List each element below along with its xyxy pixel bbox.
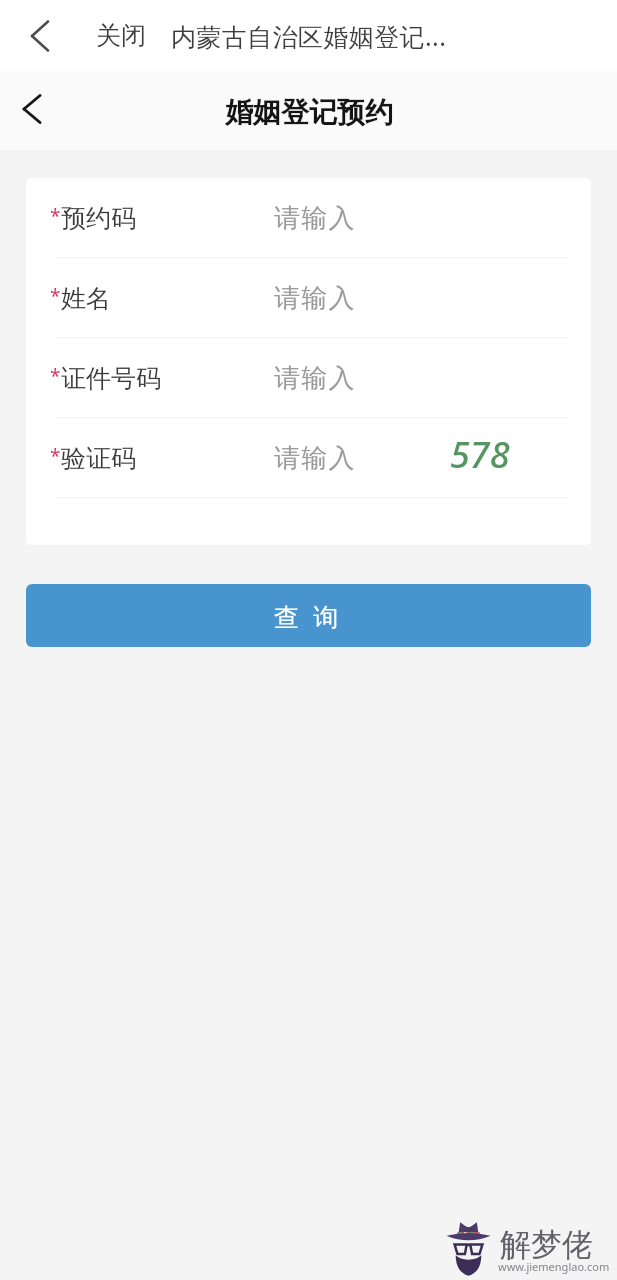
button[interactable]: * [26, 258, 591, 338]
staticText: 查 询 [274, 599, 343, 633]
button[interactable]: 查 询 [26, 584, 591, 647]
staticText: 请输入 [274, 282, 356, 315]
staticText: 验证码 [61, 443, 136, 474]
staticText: 解梦佬 [500, 1225, 593, 1264]
staticText: 请输入 [274, 362, 356, 395]
staticText: 内蒙古自治区婚姻登记... [171, 19, 447, 53]
staticText: 婚姻登记预约 [225, 95, 393, 130]
staticText: 预约码 [61, 203, 136, 234]
staticText: 请输入 [274, 442, 356, 475]
staticText: 请输入 [274, 202, 356, 235]
button[interactable]: * [26, 178, 591, 258]
staticText: 578 [450, 430, 510, 479]
staticText: * [50, 443, 61, 469]
button[interactable]: * [26, 418, 591, 498]
button[interactable]: Navigate back [8, 69, 56, 148]
button[interactable]: Back [16, 0, 64, 71]
button[interactable]: * [26, 338, 591, 418]
staticText: * [50, 203, 61, 229]
staticText: 关闭 [96, 20, 146, 51]
staticText: www.jiemenglao.com [498, 1259, 610, 1274]
staticText: 姓名 [61, 283, 111, 314]
staticText: 证件号码 [61, 363, 161, 394]
button[interactable]: 关闭 [96, 0, 146, 71]
staticText: * [50, 283, 61, 309]
staticText: * [50, 363, 61, 389]
